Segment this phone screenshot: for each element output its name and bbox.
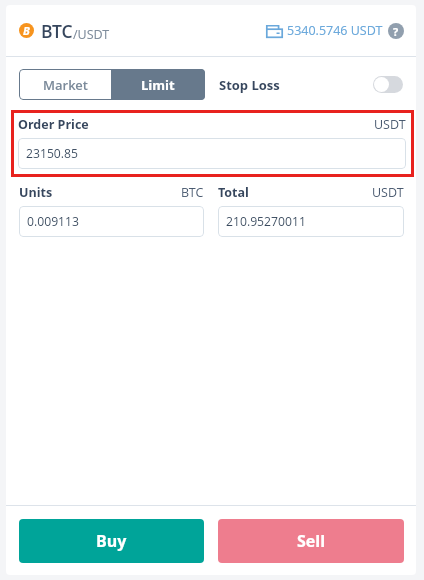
staticText: 5340.5746 USDT bbox=[287, 22, 383, 39]
button[interactable]: Stop Loss toggle bbox=[373, 76, 403, 93]
staticText: /USDT bbox=[73, 26, 110, 43]
staticText: Market bbox=[43, 76, 88, 94]
button[interactable]: 5340.5746 USDT bbox=[266, 22, 383, 39]
staticText: BTC bbox=[181, 184, 204, 201]
staticText: B bbox=[23, 23, 30, 38]
staticText: 23150.85 bbox=[26, 145, 79, 162]
staticText: USDT bbox=[372, 184, 404, 201]
staticText: 210.95270011 bbox=[226, 213, 306, 230]
staticText: Stop Loss bbox=[219, 76, 280, 94]
button[interactable]: Limit bbox=[111, 69, 205, 100]
staticText: BTC bbox=[41, 19, 73, 43]
staticText: Order Price bbox=[18, 116, 89, 133]
staticText: Limit bbox=[141, 76, 175, 94]
button[interactable]: 0.009113 bbox=[27, 206, 204, 237]
staticText: USDT bbox=[374, 116, 406, 133]
button[interactable]: Sell bbox=[218, 519, 404, 563]
button[interactable]: Help bbox=[388, 23, 404, 39]
staticText: Total bbox=[218, 184, 249, 201]
button[interactable]: Market bbox=[19, 69, 111, 100]
button[interactable]: 210.95270011 bbox=[226, 206, 404, 237]
staticText: 0.009113 bbox=[27, 213, 80, 230]
staticText: Buy bbox=[96, 530, 127, 552]
staticText: Sell bbox=[297, 530, 326, 552]
staticText: ? bbox=[393, 24, 399, 39]
button[interactable]: 23150.85 bbox=[26, 138, 406, 169]
button[interactable]: Buy bbox=[19, 519, 204, 563]
staticText: Units bbox=[19, 184, 53, 201]
